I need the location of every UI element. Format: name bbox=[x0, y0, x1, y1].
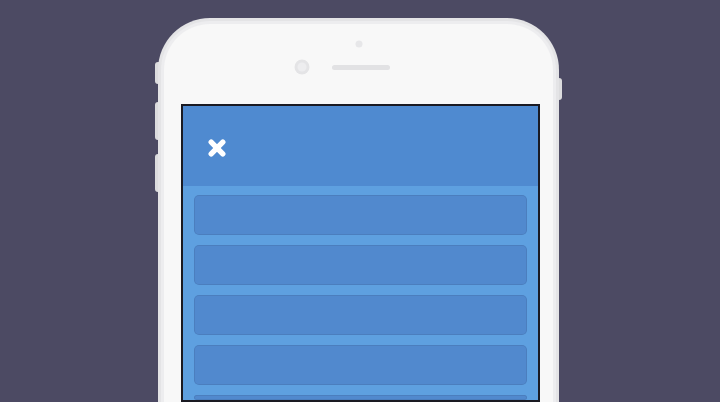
button[interactable] bbox=[194, 395, 527, 400]
button[interactable]: Close bbox=[201, 132, 233, 164]
button[interactable] bbox=[194, 245, 527, 285]
button[interactable] bbox=[194, 195, 527, 235]
button[interactable] bbox=[194, 345, 527, 385]
button[interactable] bbox=[194, 295, 527, 335]
